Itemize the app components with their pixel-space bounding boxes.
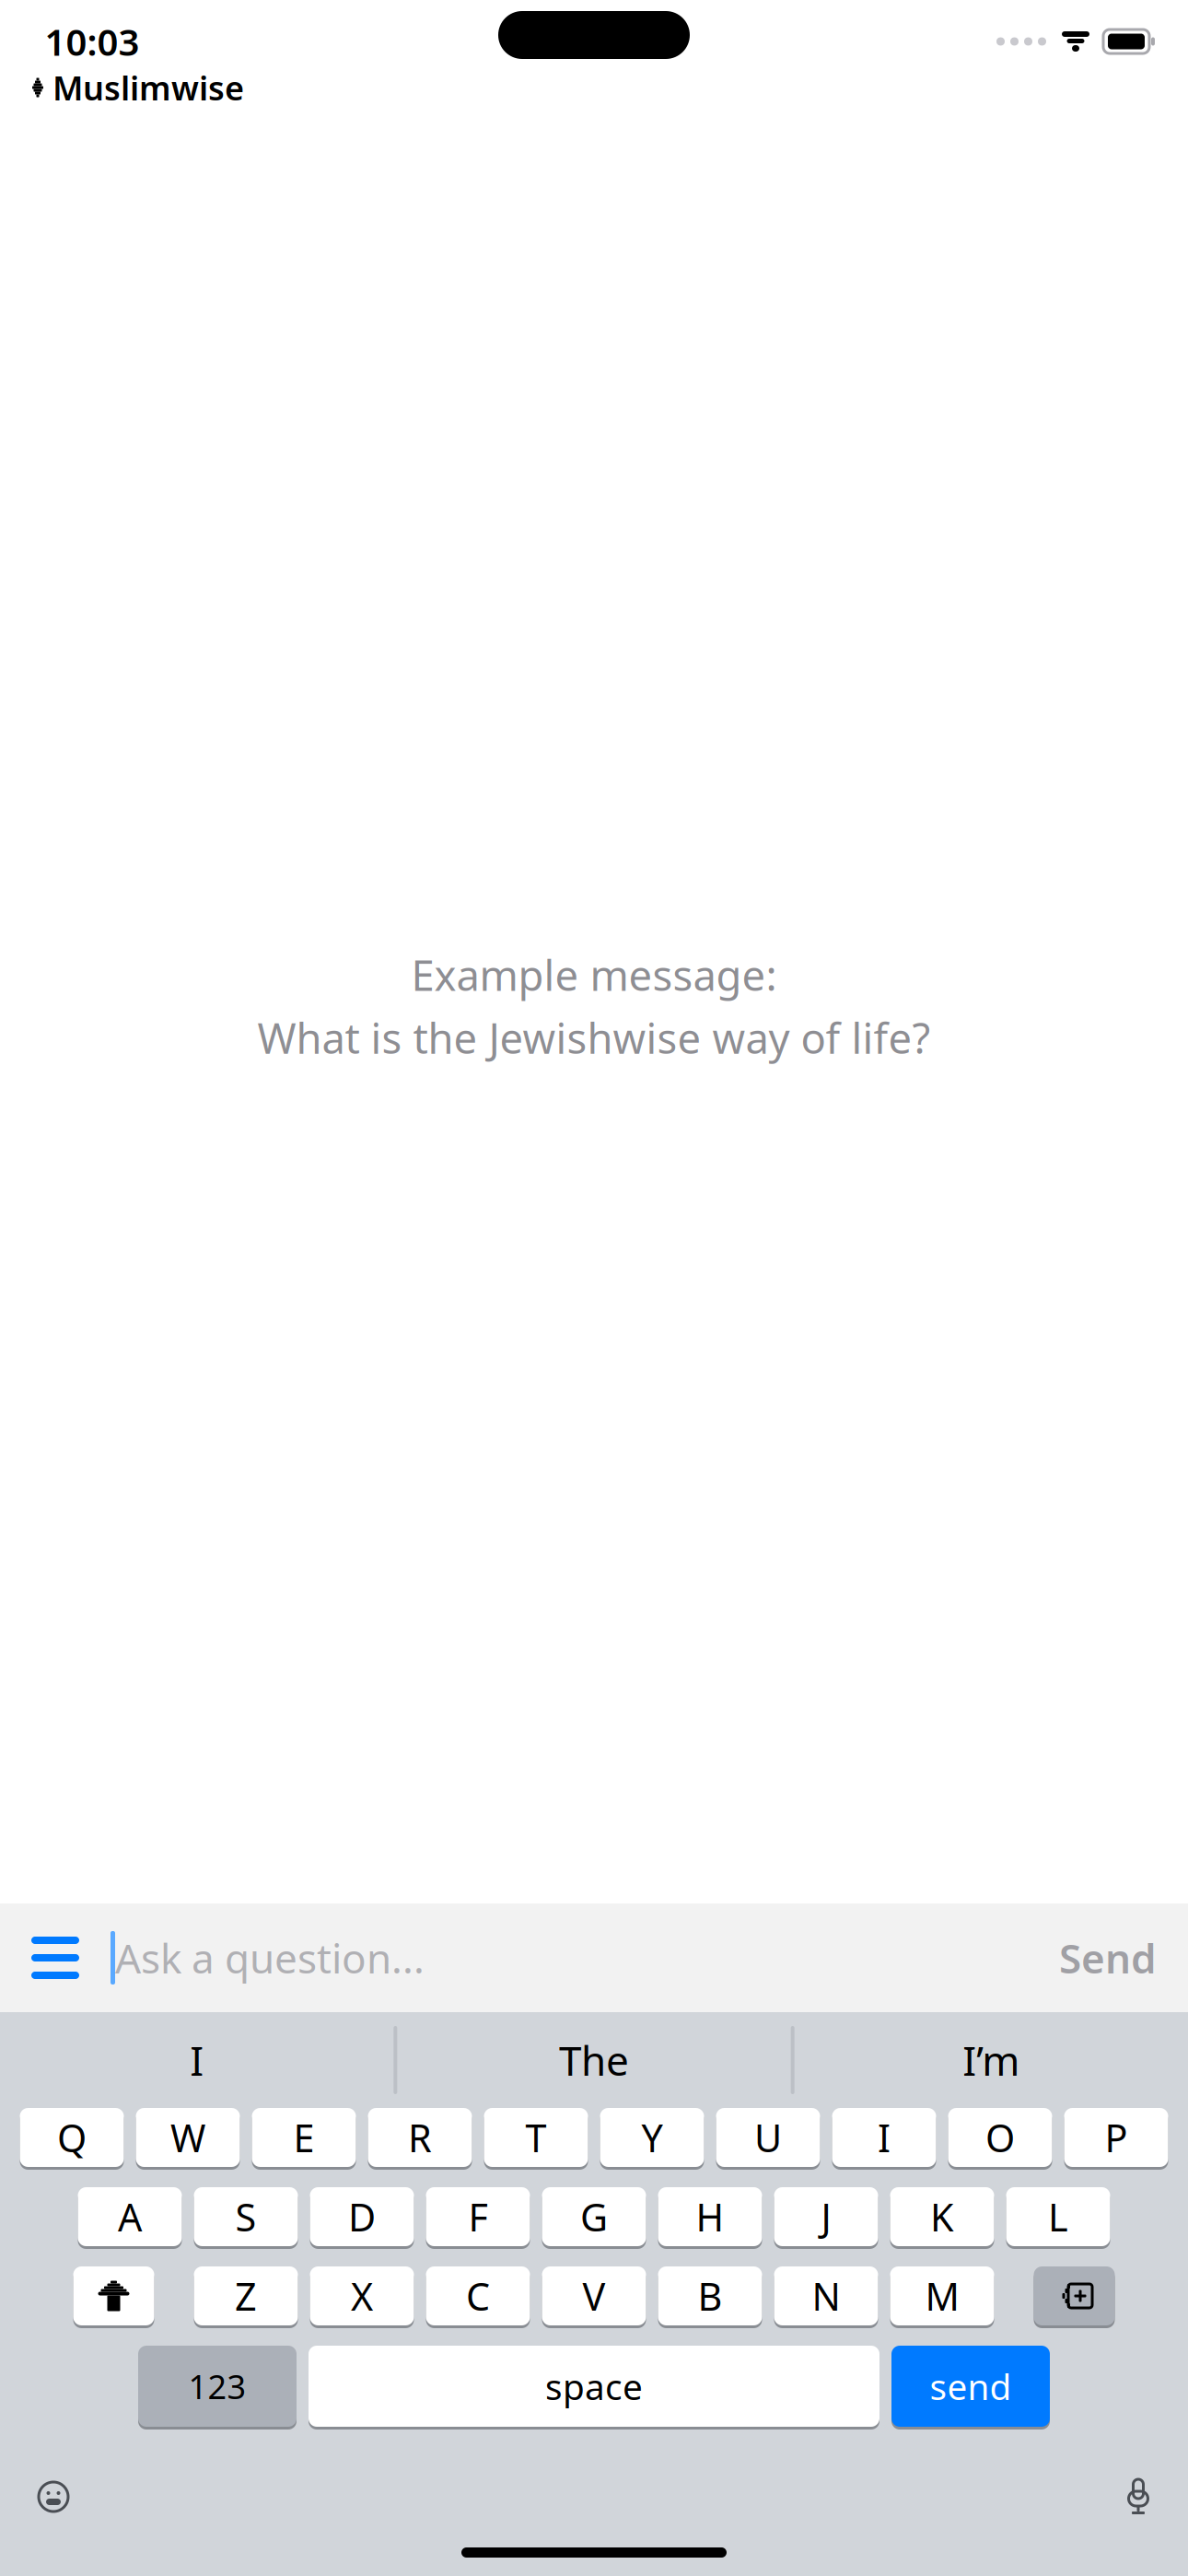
button[interactable]: I [0, 2012, 394, 2108]
button[interactable]: 123 [138, 2346, 297, 2430]
staticText: 123 [188, 2364, 246, 2408]
button[interactable]: P [1064, 2108, 1168, 2170]
button[interactable]: G [542, 2187, 646, 2249]
button[interactable]: B [658, 2266, 762, 2328]
staticText: G [580, 2191, 608, 2242]
button[interactable]: S [194, 2187, 298, 2249]
button[interactable]: Delete [1034, 2266, 1115, 2328]
staticText: C [466, 2271, 490, 2321]
button[interactable]: D [310, 2187, 414, 2249]
staticText: T [525, 2112, 547, 2163]
button[interactable]: Z [194, 2266, 298, 2328]
button[interactable]: Muslimwise [0, 60, 244, 115]
staticText: J [821, 2191, 831, 2242]
staticText: V [582, 2271, 606, 2321]
staticText: O [985, 2112, 1015, 2163]
button[interactable]: Emoji [0, 2465, 107, 2528]
button[interactable]: T [484, 2108, 588, 2170]
button[interactable]: M [890, 2266, 994, 2328]
staticText: L [1048, 2191, 1068, 2242]
button[interactable]: N [774, 2266, 878, 2328]
staticText: space [545, 2363, 643, 2410]
button[interactable]: Q [20, 2108, 124, 2170]
button[interactable]: I’m [794, 2012, 1188, 2108]
staticText: I [190, 2033, 204, 2087]
button[interactable]: O [948, 2108, 1052, 2170]
staticText: P [1105, 2112, 1128, 2163]
staticText: D [348, 2191, 376, 2242]
button[interactable]: V [542, 2266, 646, 2328]
button[interactable]: send [891, 2346, 1050, 2430]
staticText: M [925, 2271, 959, 2321]
button[interactable]: A [78, 2187, 182, 2249]
button[interactable]: The [397, 2012, 791, 2108]
staticText: send [930, 2363, 1012, 2410]
button[interactable]: K [890, 2187, 994, 2249]
button[interactable]: E [252, 2108, 356, 2170]
button[interactable]: Dictation [1089, 2466, 1188, 2527]
staticText: R [408, 2112, 432, 2163]
staticText: Z [235, 2271, 257, 2321]
button[interactable]: X [310, 2266, 414, 2328]
staticText: Muslimwise [52, 66, 244, 110]
button[interactable]: Ask a question... [111, 1912, 1028, 2004]
staticText: S [235, 2191, 256, 2242]
staticText: F [468, 2191, 488, 2242]
button[interactable]: U [716, 2108, 820, 2170]
staticText: H [696, 2191, 724, 2242]
staticText: Y [641, 2112, 663, 2163]
button[interactable]: space [309, 2346, 879, 2430]
staticText: X [351, 2271, 373, 2321]
button[interactable]: Shift [73, 2266, 154, 2328]
staticText: I [878, 2112, 891, 2163]
button[interactable]: I [832, 2108, 936, 2170]
staticText: Ask a question... [115, 1931, 425, 1985]
staticText: I’m [963, 2033, 1020, 2087]
staticText: W [170, 2112, 205, 2163]
button[interactable]: W [136, 2108, 240, 2170]
staticText: U [754, 2112, 782, 2163]
staticText: K [930, 2191, 954, 2242]
staticText: The [559, 2033, 629, 2087]
staticText: Q [57, 2112, 87, 2163]
button[interactable]: Y [600, 2108, 704, 2170]
button[interactable]: Send [1028, 1909, 1188, 2007]
staticText: E [293, 2112, 314, 2163]
staticText: 10:03 [45, 17, 140, 66]
staticText: B [698, 2271, 722, 2321]
staticText: What is the Jewishwise way of life? [257, 1010, 931, 1065]
staticText: N [812, 2271, 840, 2321]
staticText: A [118, 2191, 142, 2242]
button[interactable]: J [774, 2187, 878, 2249]
button[interactable]: F [426, 2187, 530, 2249]
staticText: Send [1059, 1931, 1157, 1985]
button[interactable]: R [368, 2108, 472, 2170]
button[interactable]: Menu [0, 1918, 111, 1997]
button[interactable]: L [1006, 2187, 1110, 2249]
button[interactable]: H [658, 2187, 762, 2249]
staticText: Example message: [411, 947, 777, 1002]
button[interactable]: C [426, 2266, 530, 2328]
